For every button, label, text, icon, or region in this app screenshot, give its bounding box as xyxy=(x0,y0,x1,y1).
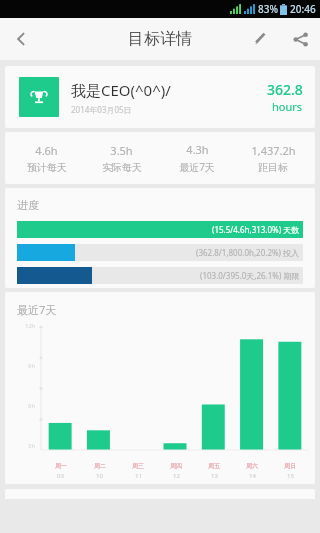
button[interactable]: 3.5h xyxy=(84,143,159,174)
staticText: 3.5h xyxy=(110,143,133,158)
staticText: 距目标 xyxy=(258,161,288,174)
staticText: 10 xyxy=(96,472,103,480)
staticText: 15 xyxy=(287,472,294,480)
staticText: 2014年03月05日 xyxy=(71,104,132,115)
staticText: 周六 xyxy=(246,462,258,470)
staticText: 4.3h xyxy=(186,142,209,157)
staticText: 4.6h xyxy=(35,143,58,158)
button[interactable]: 4.6h xyxy=(9,143,84,174)
staticText: 预计每天 xyxy=(27,161,67,174)
staticText: 3h xyxy=(28,442,36,450)
staticText: hours xyxy=(272,99,303,114)
staticText: 周日 xyxy=(284,462,296,470)
staticText: 周四 xyxy=(170,462,182,470)
staticText: 13 xyxy=(211,472,218,480)
staticText: 周五 xyxy=(208,462,220,470)
button[interactable]: 我是CEO(^0^)/ xyxy=(5,66,315,128)
button[interactable]: (15.5/4.6h,313.0%) 天数 xyxy=(17,221,303,238)
staticText: 9h xyxy=(28,362,36,370)
staticText: 11 xyxy=(135,472,142,480)
staticText: 14 xyxy=(249,472,256,480)
staticText: 83% xyxy=(258,2,278,16)
button[interactable]: 4.3h xyxy=(159,142,235,174)
staticText: 6h xyxy=(28,402,36,410)
staticText: 12h xyxy=(25,322,36,330)
staticText: 周三 xyxy=(132,462,144,470)
staticText: 12 xyxy=(173,472,180,480)
button[interactable]: Share xyxy=(280,19,320,59)
button[interactable]: Edit xyxy=(240,19,280,59)
button[interactable]: 1,437.2h xyxy=(235,143,311,174)
staticText: 最近7天 xyxy=(17,302,57,317)
staticText: 进度 xyxy=(17,198,39,212)
staticText: 我是CEO(^0^)/ xyxy=(71,80,171,100)
staticText: 目标详情 xyxy=(128,29,192,49)
staticText: 周二 xyxy=(94,462,106,470)
button[interactable]: (103.0/395.0天,26.1%) 期限 xyxy=(17,267,303,284)
button[interactable]: (362.8/1,800.0h,20.2%) 投入 xyxy=(17,244,303,261)
staticText: (362.8/1,800.0h,20.2%) 投入 xyxy=(196,247,300,258)
staticText: (15.5/4.6h,313.0%) 天数 xyxy=(212,224,300,235)
staticText: 周一 xyxy=(55,462,67,470)
staticText: 20:46 xyxy=(290,2,316,16)
staticText: 实际每天 xyxy=(102,161,142,174)
staticText: 最近7天 xyxy=(179,160,215,174)
staticText: 03 xyxy=(57,472,64,480)
button[interactable]: Back xyxy=(0,18,42,60)
staticText: 362.8 xyxy=(267,80,303,99)
staticText: 1,437.2h xyxy=(251,143,296,158)
staticText: (103.0/395.0天,26.1%) 期限 xyxy=(200,270,300,281)
button[interactable]: 12h xyxy=(5,321,315,484)
